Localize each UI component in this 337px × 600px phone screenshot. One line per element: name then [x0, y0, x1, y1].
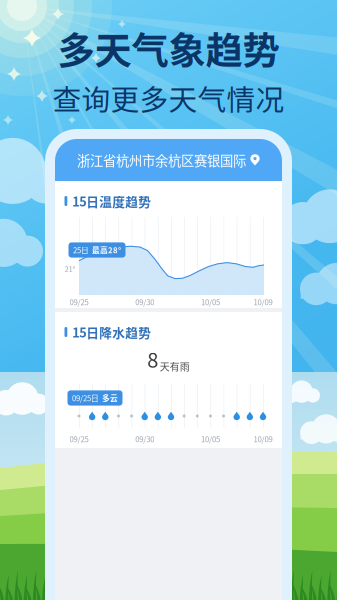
staticText: 09/25: [69, 433, 88, 445]
staticText: 浙江省杭州市余杭区赛银国际: [77, 150, 246, 170]
staticText: 多云: [102, 392, 118, 404]
staticText: 10/09: [253, 296, 272, 308]
staticText: 15日降水趋势: [72, 323, 151, 341]
staticText: 21°: [64, 263, 75, 275]
staticText: 10/05: [201, 296, 220, 308]
staticText: 09/30: [135, 296, 154, 308]
staticText: 8: [147, 344, 158, 373]
staticText: 查询更多天气情况: [52, 77, 284, 119]
staticText: 天有雨: [160, 359, 190, 373]
staticText: 25日: [73, 244, 89, 256]
staticText: 10/05: [201, 433, 220, 445]
staticText: 最高28°: [92, 244, 121, 256]
staticText: 多天气象趋势: [57, 21, 279, 75]
staticText: 09/25: [69, 296, 88, 308]
staticText: 09/30: [135, 433, 154, 445]
staticText: 10/09: [253, 433, 272, 445]
staticText: 15日温度趋势: [72, 192, 151, 210]
staticText: 09/25日: [72, 392, 99, 404]
